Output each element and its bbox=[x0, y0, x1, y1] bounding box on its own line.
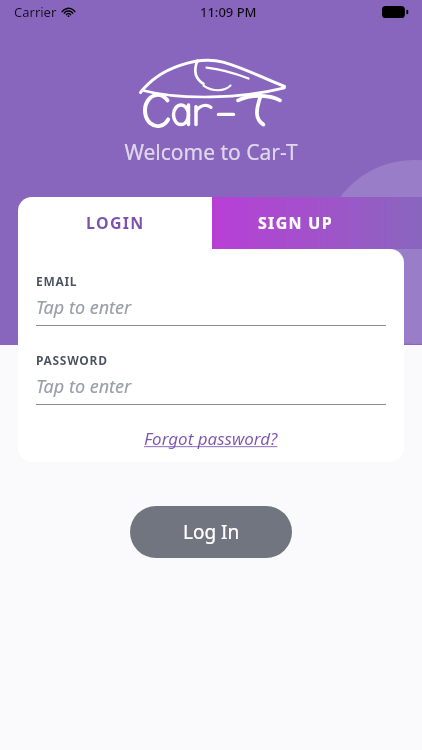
staticText: SIGN UP bbox=[258, 212, 333, 234]
staticText: LOGIN bbox=[86, 212, 145, 234]
staticText: Welcome to Car-T bbox=[0, 138, 422, 167]
button[interactable]: Log In bbox=[130, 506, 292, 558]
staticText: Tap to enter bbox=[36, 295, 132, 320]
staticText: PASSWORD bbox=[36, 352, 108, 368]
staticText: Log In bbox=[183, 519, 240, 545]
staticText: EMAIL bbox=[36, 273, 78, 289]
staticText: Tap to enter bbox=[36, 374, 132, 399]
other: Battery bbox=[382, 6, 408, 18]
staticText: 11:09 PM bbox=[200, 3, 257, 21]
staticText: Forgot password? bbox=[144, 427, 278, 450]
button[interactable]: SIGN UP bbox=[212, 197, 422, 249]
button[interactable]: PASSWORD bbox=[36, 352, 386, 405]
button[interactable]: EMAIL bbox=[36, 273, 386, 326]
staticText: Carrier bbox=[14, 3, 57, 21]
button[interactable]: LOGIN bbox=[18, 197, 212, 249]
button[interactable]: Forgot password? bbox=[140, 423, 282, 454]
other: Car-T logo bbox=[136, 52, 286, 130]
other: Wi-Fi bbox=[62, 6, 75, 19]
